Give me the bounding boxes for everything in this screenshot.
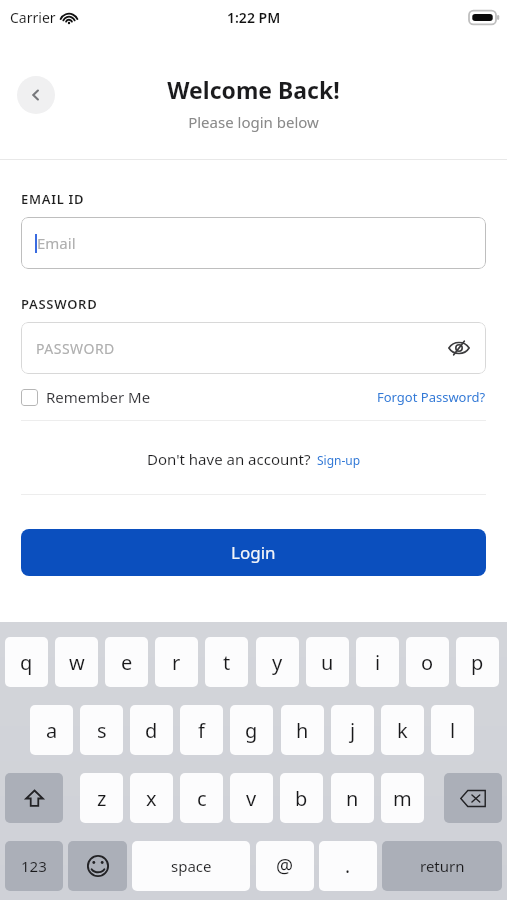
staticText: r bbox=[172, 649, 181, 676]
staticText: w bbox=[69, 649, 85, 676]
staticText: u bbox=[321, 649, 334, 676]
button[interactable]: u bbox=[306, 637, 349, 687]
button[interactable]: 123 bbox=[5, 841, 63, 891]
button[interactable]: PASSWORD bbox=[21, 322, 486, 374]
staticText: Carrier bbox=[10, 8, 56, 27]
button[interactable]: Back bbox=[17, 76, 55, 114]
staticText: j bbox=[350, 717, 356, 744]
staticText: t bbox=[223, 649, 231, 676]
staticText: l bbox=[450, 717, 456, 744]
staticText: space bbox=[171, 856, 212, 876]
staticText: s bbox=[97, 717, 107, 744]
button[interactable]: . bbox=[319, 841, 377, 891]
button[interactable]: Delete bbox=[444, 773, 502, 823]
button[interactable]: r bbox=[155, 637, 198, 687]
button[interactable]: Shift bbox=[5, 773, 63, 823]
button[interactable]: k bbox=[381, 705, 424, 755]
button[interactable]: Login bbox=[21, 529, 486, 576]
staticText: 123 bbox=[21, 856, 47, 876]
staticText: n bbox=[346, 785, 359, 812]
staticText: Remember Me bbox=[46, 387, 151, 407]
button[interactable]: m bbox=[381, 773, 424, 823]
button[interactable]: a bbox=[30, 705, 73, 755]
button[interactable]: d bbox=[130, 705, 173, 755]
button[interactable]: Remember Me bbox=[21, 387, 151, 407]
button[interactable]: h bbox=[281, 705, 324, 755]
staticText: . bbox=[345, 853, 351, 879]
button[interactable]: Email bbox=[21, 217, 486, 269]
button[interactable]: o bbox=[406, 637, 449, 687]
staticText: y bbox=[272, 649, 283, 676]
button[interactable]: q bbox=[5, 637, 48, 687]
staticText: i bbox=[375, 649, 381, 676]
button[interactable]: j bbox=[331, 705, 374, 755]
staticText: Welcome Back! bbox=[167, 74, 340, 105]
staticText: Sign-up bbox=[317, 452, 361, 468]
staticText: a bbox=[46, 717, 58, 744]
staticText: p bbox=[471, 649, 484, 676]
staticText: 1:22 PM bbox=[227, 8, 281, 27]
staticText: z bbox=[97, 785, 107, 812]
staticText: e bbox=[121, 649, 133, 676]
button[interactable]: Show password bbox=[446, 335, 472, 361]
button[interactable]: c bbox=[180, 773, 223, 823]
button[interactable]: w bbox=[55, 637, 98, 687]
staticText: Email bbox=[37, 233, 76, 253]
button[interactable]: e bbox=[105, 637, 148, 687]
button[interactable]: s bbox=[80, 705, 123, 755]
staticText: return bbox=[420, 856, 465, 876]
button[interactable]: b bbox=[280, 773, 323, 823]
button[interactable]: @ bbox=[256, 841, 314, 891]
staticText: x bbox=[146, 785, 157, 812]
staticText: k bbox=[397, 717, 408, 744]
button[interactable]: t bbox=[205, 637, 248, 687]
button[interactable]: v bbox=[230, 773, 273, 823]
staticText: g bbox=[245, 717, 258, 744]
staticText: m bbox=[393, 785, 412, 812]
staticText: PASSWORD bbox=[21, 295, 98, 313]
staticText: Forgot Password? bbox=[377, 388, 486, 406]
staticText: c bbox=[197, 785, 207, 812]
button[interactable]: p bbox=[456, 637, 499, 687]
button[interactable]: Forgot Password? bbox=[377, 388, 486, 406]
staticText: Please login below bbox=[188, 112, 319, 132]
staticText: d bbox=[145, 717, 158, 744]
staticText: h bbox=[296, 717, 309, 744]
button[interactable]: f bbox=[180, 705, 223, 755]
staticText: EMAIL ID bbox=[21, 190, 85, 208]
button[interactable]: l bbox=[431, 705, 474, 755]
staticText: Login bbox=[231, 541, 276, 564]
button[interactable]: Emoji bbox=[68, 841, 127, 891]
button[interactable]: i bbox=[356, 637, 399, 687]
staticText: @ bbox=[276, 853, 294, 879]
button[interactable]: space bbox=[132, 841, 250, 891]
staticText: Don't have an account? bbox=[147, 449, 311, 469]
button[interactable]: Sign-up bbox=[317, 452, 361, 469]
staticText: q bbox=[20, 649, 33, 676]
button[interactable]: return bbox=[382, 841, 502, 891]
staticText: v bbox=[246, 785, 257, 812]
button[interactable]: z bbox=[80, 773, 123, 823]
staticText: o bbox=[421, 649, 434, 676]
button[interactable]: x bbox=[130, 773, 173, 823]
staticText: b bbox=[295, 785, 308, 812]
button[interactable]: y bbox=[256, 637, 299, 687]
button[interactable]: n bbox=[331, 773, 374, 823]
staticText: f bbox=[198, 717, 205, 744]
button[interactable]: g bbox=[230, 705, 273, 755]
staticText: PASSWORD bbox=[36, 339, 115, 358]
